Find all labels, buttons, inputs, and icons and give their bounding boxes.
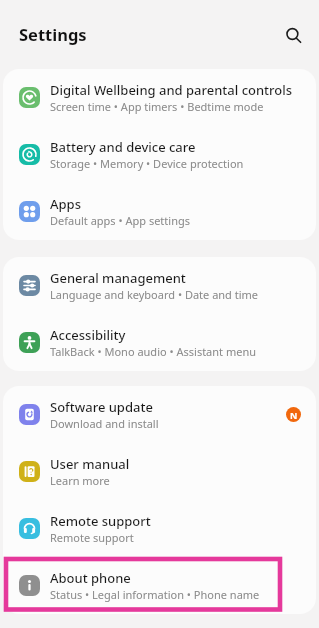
staticText: Remote support: [50, 530, 134, 545]
staticText: Settings: [19, 23, 87, 45]
staticText: N: [290, 409, 298, 421]
button[interactable]: User manual: [3, 443, 316, 500]
staticText: Language and keyboard • Date and time: [50, 287, 259, 302]
button[interactable]: Remote support: [3, 500, 316, 557]
staticText: Learn more: [50, 473, 110, 488]
staticText: User manual: [50, 455, 130, 473]
staticText: Software update: [50, 398, 153, 416]
button[interactable]: Battery and device care: [3, 126, 316, 183]
button[interactable]: Accessibility: [3, 314, 316, 371]
staticText: Apps: [50, 195, 81, 213]
staticText: Battery and device care: [50, 138, 196, 156]
staticText: Status • Legal information • Phone name: [50, 587, 260, 602]
staticText: TalkBack • Mono audio • Assistant menu: [50, 344, 257, 359]
staticText: Storage • Memory • Device protection: [50, 156, 244, 171]
staticText: Accessibility: [50, 326, 126, 344]
staticText: About phone: [50, 569, 131, 587]
button[interactable]: About phone: [3, 557, 316, 614]
staticText: Remote support: [50, 512, 151, 530]
staticText: Digital Wellbeing and parental controls: [50, 81, 293, 99]
button[interactable]: General management: [3, 257, 316, 314]
button[interactable]: [286, 27, 302, 43]
staticText: Screen time • App timers • Bedtime mode: [50, 99, 264, 114]
button[interactable]: Software update: [3, 386, 316, 443]
staticText: General management: [50, 269, 186, 287]
staticText: Download and install: [50, 416, 159, 431]
staticText: Default apps • App settings: [50, 213, 190, 228]
button[interactable]: Apps: [3, 183, 316, 240]
button[interactable]: Digital Wellbeing and parental controls: [3, 69, 316, 126]
